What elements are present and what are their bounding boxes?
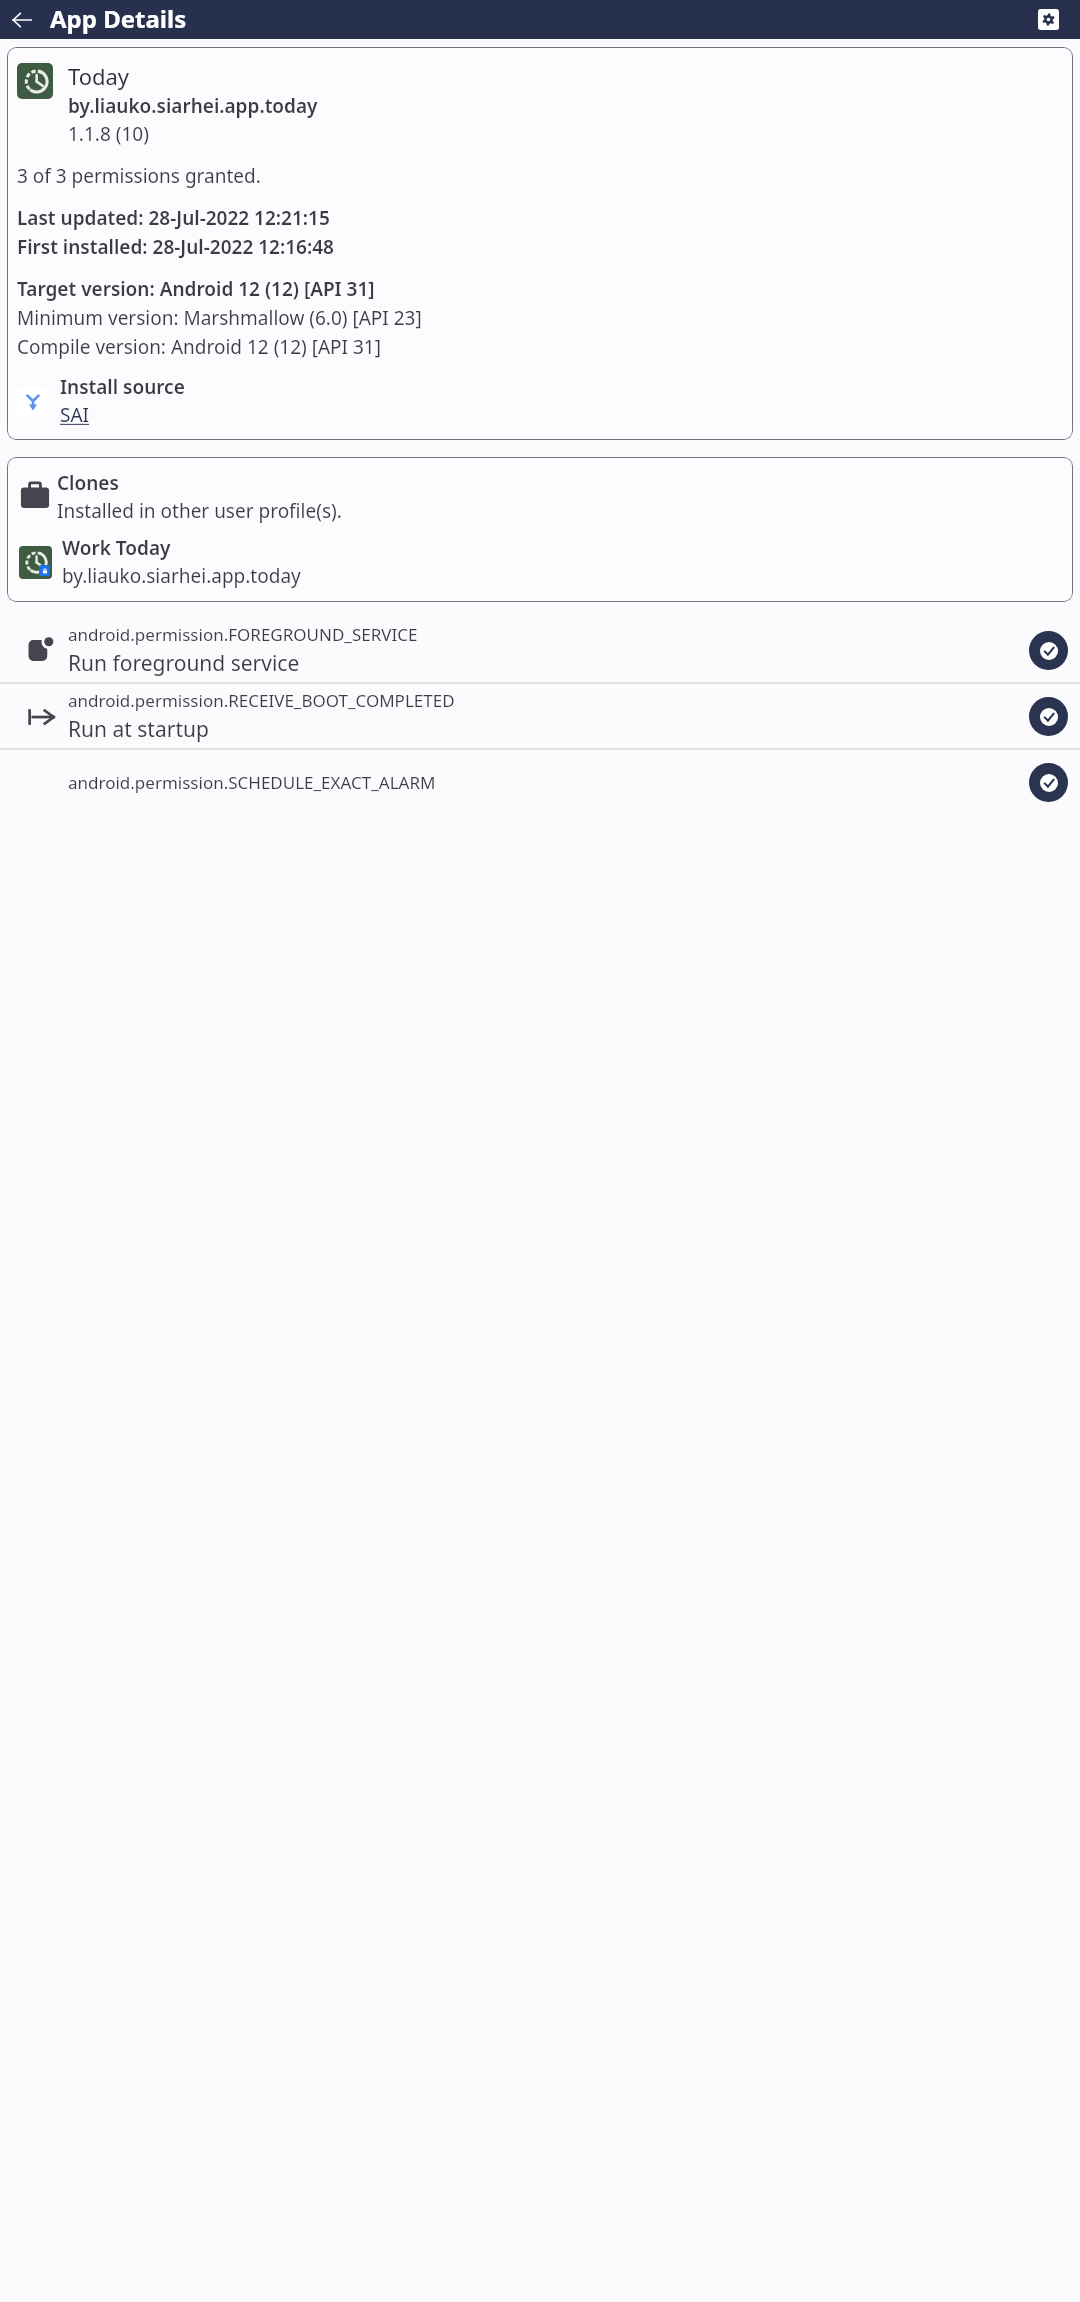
staticText: Target version: Android 12 (12) [API 31] xyxy=(17,276,375,302)
staticText: Run foreground service xyxy=(68,649,300,678)
staticText: by.liauko.siarhei.app.today xyxy=(68,93,318,119)
staticText: Run at startup xyxy=(68,715,209,744)
staticText: android.permission.FOREGROUND_SERVICE xyxy=(68,623,418,646)
staticText: Minimum version: Marshmallow (6.0) [API … xyxy=(17,305,422,331)
staticText: SAI xyxy=(60,402,90,428)
staticText: Installed in other user profile(s). xyxy=(57,498,342,524)
button[interactable]: android.permission.RECEIVE_BOOT_COMPLETE… xyxy=(0,684,1080,748)
button[interactable]: android.permission.FOREGROUND_SERVICE xyxy=(0,618,1080,682)
staticText: by.liauko.siarhei.app.today xyxy=(62,563,301,589)
button[interactable]: Today xyxy=(7,47,1073,440)
staticText: Install source xyxy=(60,374,185,400)
staticText: Work Today xyxy=(62,535,171,561)
staticText: 3 of 3 permissions granted. xyxy=(17,163,261,189)
button[interactable]: Granted xyxy=(1029,697,1068,736)
staticText: Clones xyxy=(57,470,119,496)
staticText: Today xyxy=(68,61,130,91)
staticText: App Details xyxy=(50,2,187,35)
button[interactable]: Clones xyxy=(7,457,1073,602)
button[interactable]: Back xyxy=(4,2,40,38)
staticText: android.permission.SCHEDULE_EXACT_ALARM xyxy=(68,771,436,794)
staticText: 1.1.8 (10) xyxy=(68,121,149,147)
button[interactable]: Granted xyxy=(1029,763,1068,802)
staticText: Compile version: Android 12 (12) [API 31… xyxy=(17,334,381,360)
button[interactable]: Work Today xyxy=(19,535,1063,589)
button[interactable]: Settings xyxy=(1028,0,1068,39)
button[interactable]: Install source xyxy=(17,374,1063,428)
button[interactable]: Granted xyxy=(1029,631,1068,670)
staticText: Last updated: 28-Jul-2022 12:21:15 xyxy=(17,205,330,231)
staticText: First installed: 28-Jul-2022 12:16:48 xyxy=(17,234,334,260)
staticText: android.permission.RECEIVE_BOOT_COMPLETE… xyxy=(68,689,455,712)
button[interactable]: android.permission.SCHEDULE_EXACT_ALARM xyxy=(0,750,1080,814)
